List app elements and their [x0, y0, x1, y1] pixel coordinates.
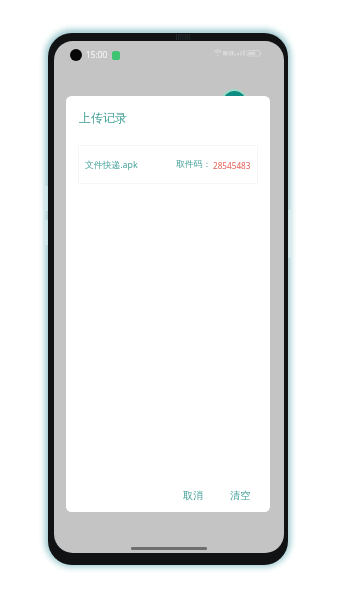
staticText: 上传记录	[79, 110, 127, 125]
staticText: 取消	[183, 489, 204, 502]
button[interactable]: 取消	[177, 485, 210, 506]
button[interactable]: 清空	[224, 485, 257, 506]
staticText: 清空	[230, 489, 251, 502]
button[interactable]: 文件快递.apk	[78, 145, 258, 184]
staticText: 28545483	[213, 160, 251, 171]
other: Front camera	[70, 49, 82, 61]
staticText: 15:00	[86, 49, 108, 60]
staticText: 取件码：	[176, 159, 212, 170]
staticText: 文件快递.apk	[85, 159, 138, 171]
